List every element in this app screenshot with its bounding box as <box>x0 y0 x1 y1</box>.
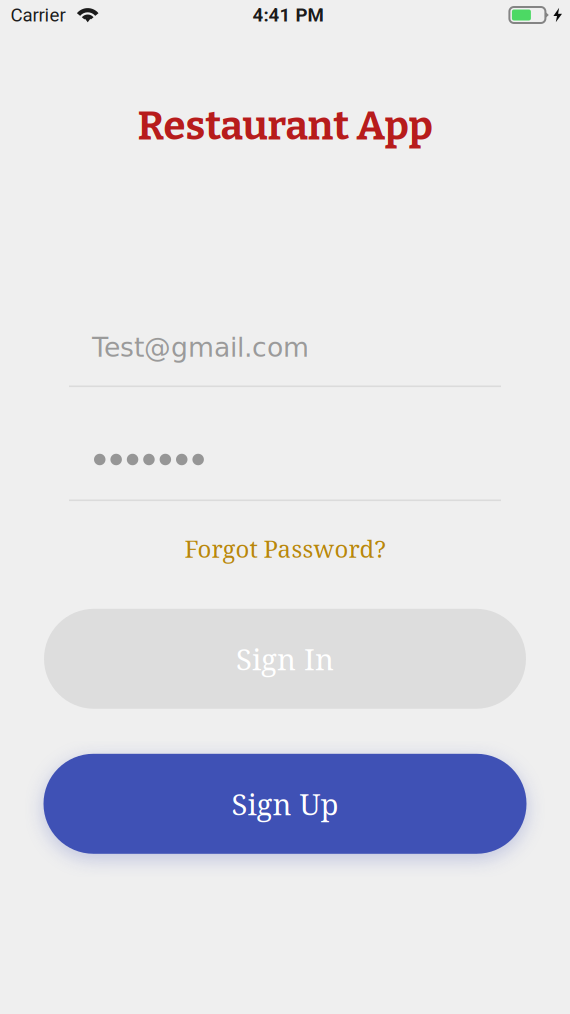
staticText: Restaurant App <box>137 102 432 150</box>
staticText: Sign In <box>236 639 334 679</box>
staticText: Sign Up <box>231 784 338 824</box>
staticText: Carrier <box>10 4 65 26</box>
staticText: Test@gmail.com <box>92 332 309 363</box>
staticText: Forgot Password? <box>184 532 385 565</box>
staticText: 4:41 PM <box>252 4 323 26</box>
button[interactable]: Sign In <box>44 609 526 709</box>
button[interactable]: Sign Up <box>43 754 526 854</box>
button[interactable]: Forgot Password? <box>176 528 393 569</box>
